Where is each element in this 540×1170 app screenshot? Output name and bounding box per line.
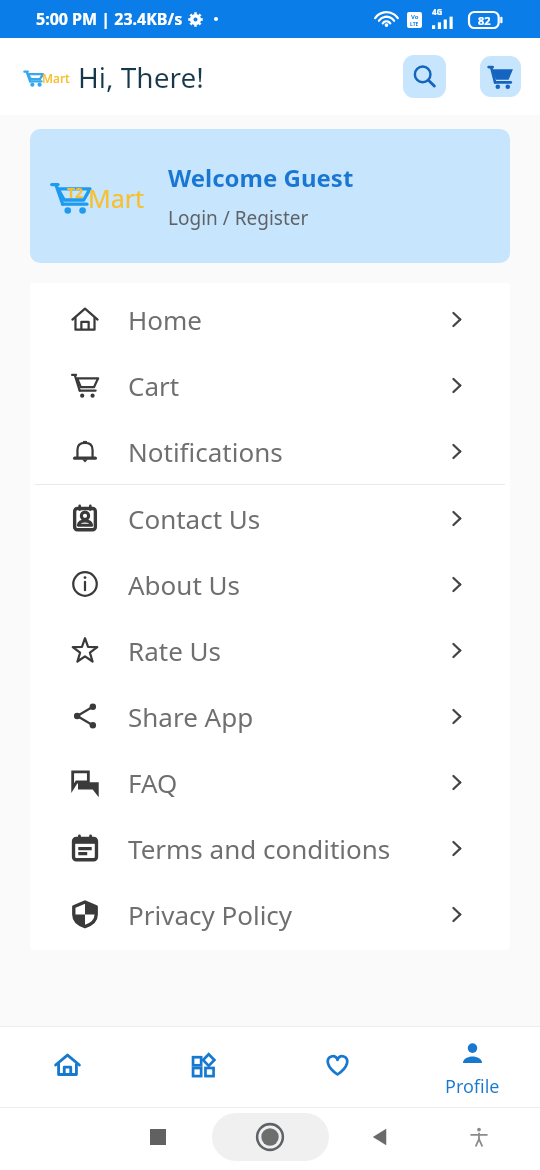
staticText: FAQ [128,765,178,800]
button[interactable]: Contact Us [30,485,510,551]
button[interactable]: Wishlist [270,1026,405,1107]
button[interactable]: Home [30,286,510,352]
button[interactable]: Home [0,1026,135,1107]
staticText: 82 [478,13,491,28]
other: Home [256,1123,284,1151]
staticText: Cart [128,368,180,403]
button[interactable]: Profile [405,1026,540,1107]
button[interactable]: Rate Us [30,617,510,683]
staticText: Profile [445,1074,500,1099]
staticText: Hi, There! [78,58,204,96]
staticText: Home [128,302,202,337]
button[interactable]: Cart [30,352,510,418]
button[interactable]: Privacy Policy [30,881,510,947]
staticText: 5:00 PM | 23.4KB/s [36,8,183,30]
staticText: Notifications [128,434,283,469]
other: Accessibility [468,1126,490,1148]
other: Back [368,1125,392,1149]
staticText: Share App [128,699,254,734]
staticText: Contact Us [128,501,261,536]
staticText: 4G [432,6,443,17]
staticText: About Us [128,567,241,602]
button[interactable]: Search [403,55,446,98]
staticText: Terms and conditions [128,831,391,866]
button[interactable]: Terms and conditions [30,815,510,881]
staticText: Vo [411,13,419,21]
button[interactable]: About Us [30,551,510,617]
staticText: Login / Register [168,205,309,231]
staticText: LTE [410,21,419,28]
staticText: Privacy Policy [128,897,293,932]
button[interactable]: Cart [480,56,521,97]
staticText: Mart [88,181,145,215]
button[interactable]: FAQ [30,749,510,815]
button[interactable]: Share App [30,683,510,749]
staticText: Welcome Guest [168,161,354,194]
button[interactable]: Categories [135,1026,270,1107]
staticText: Rate Us [128,633,222,668]
staticText: Mart [42,70,70,86]
button[interactable]: Notifications [30,418,510,484]
button[interactable]: T2 [30,129,510,263]
staticText: T2 [67,183,84,202]
